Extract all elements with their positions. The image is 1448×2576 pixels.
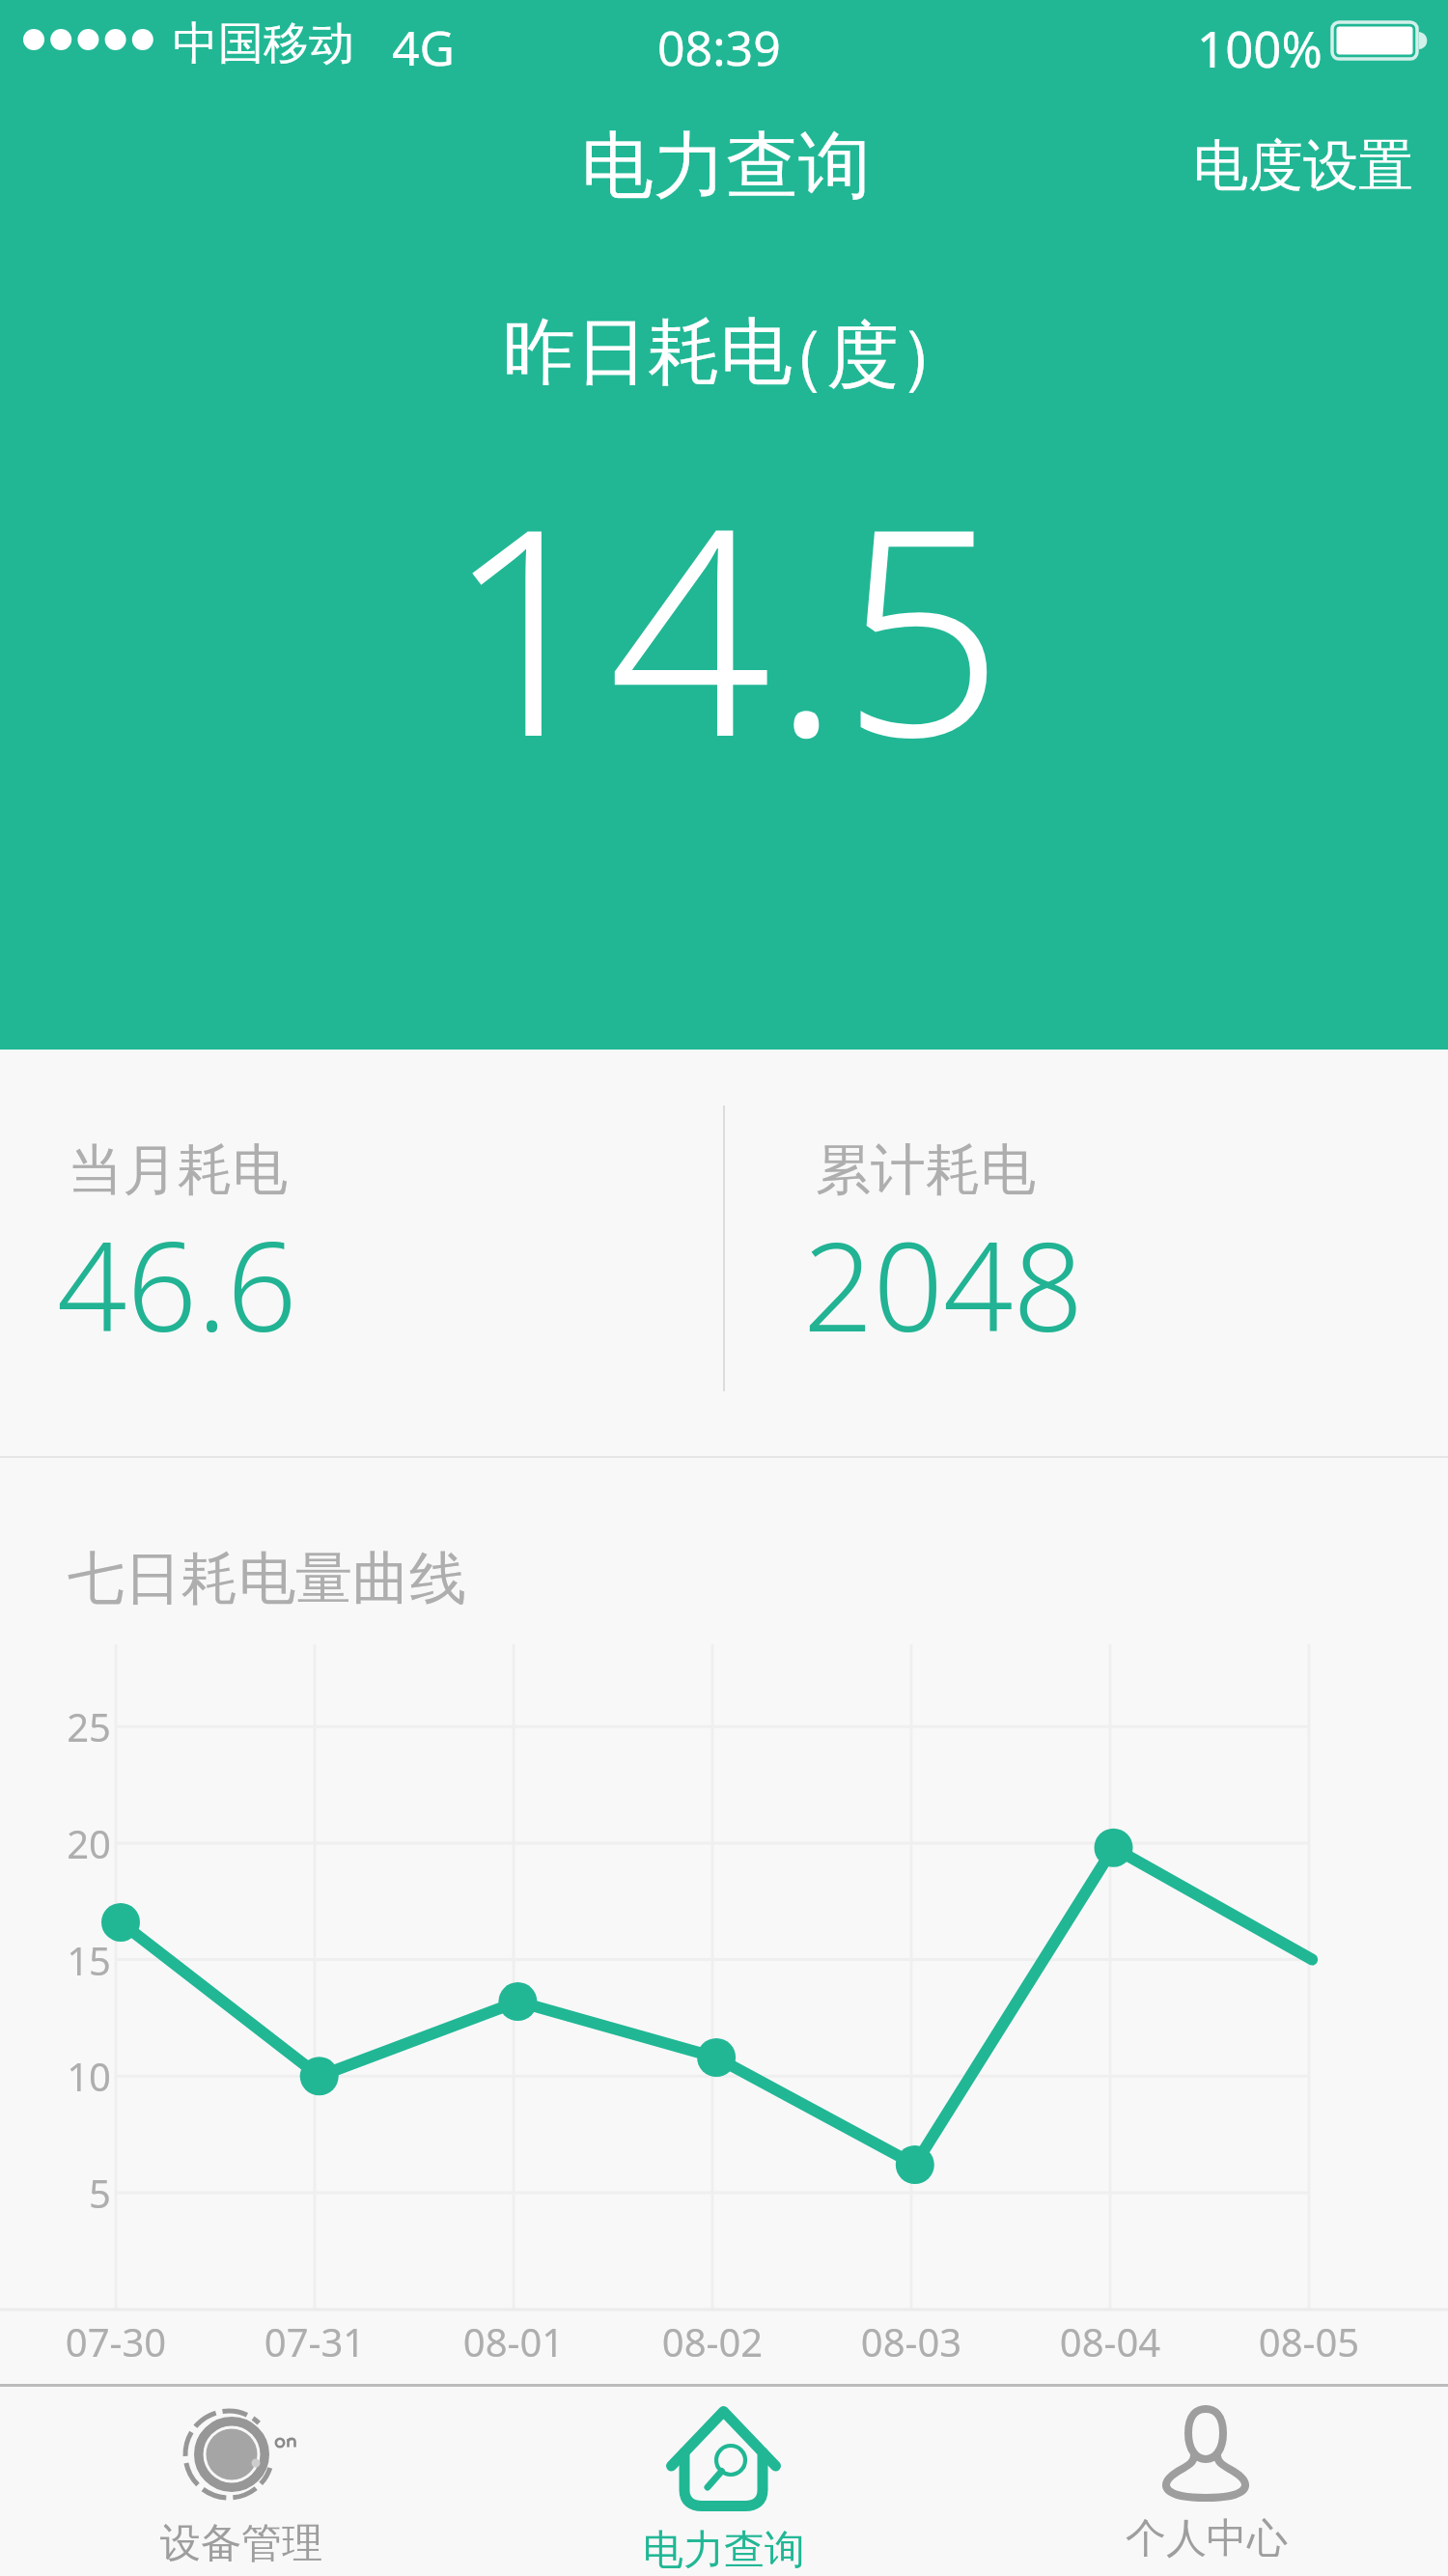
staticText: 25 <box>4 1700 111 1752</box>
staticText: 个人中心 <box>1126 2513 1288 2564</box>
staticText: （度） <box>756 311 970 402</box>
staticText: 昨日耗电 <box>503 307 793 398</box>
staticText: 07-31 <box>218 2315 411 2367</box>
staticText: 电力查询 <box>581 121 871 211</box>
staticText: 20 <box>4 1817 111 1869</box>
staticText: 08:39 <box>657 14 781 80</box>
staticText: 08-03 <box>815 2315 1008 2367</box>
staticText: 七日耗电量曲线 <box>68 1543 466 1614</box>
staticText: 08-01 <box>417 2315 610 2367</box>
staticText: 5 <box>4 2167 111 2219</box>
button[interactable]: Power query <box>483 2387 965 2576</box>
staticText: 07-30 <box>19 2315 212 2367</box>
button[interactable]: Profile <box>965 2387 1448 2576</box>
staticText: 46.6 <box>57 1200 297 1367</box>
staticText: 08-04 <box>1014 2315 1207 2367</box>
staticText: 电度设置 <box>1193 131 1413 201</box>
button[interactable]: 电度设置 <box>1162 118 1444 214</box>
staticText: 2048 <box>803 1200 1084 1367</box>
staticText: 设备管理 <box>160 2518 322 2569</box>
staticText: 4G <box>392 14 455 80</box>
staticText: 08-02 <box>616 2315 809 2367</box>
staticText: 累计耗电 <box>816 1135 1036 1205</box>
staticText: 14.5 <box>445 431 1005 820</box>
staticText: 15 <box>4 1934 111 1986</box>
staticText: 10 <box>4 2050 111 2102</box>
button[interactable]: Device management <box>0 2387 483 2576</box>
staticText: 08-05 <box>1212 2315 1406 2367</box>
staticText: 电力查询 <box>643 2525 805 2576</box>
staticText: 当月耗电 <box>68 1135 288 1205</box>
staticText: 100% <box>1197 14 1323 81</box>
staticText: 中国移动 <box>173 15 354 72</box>
